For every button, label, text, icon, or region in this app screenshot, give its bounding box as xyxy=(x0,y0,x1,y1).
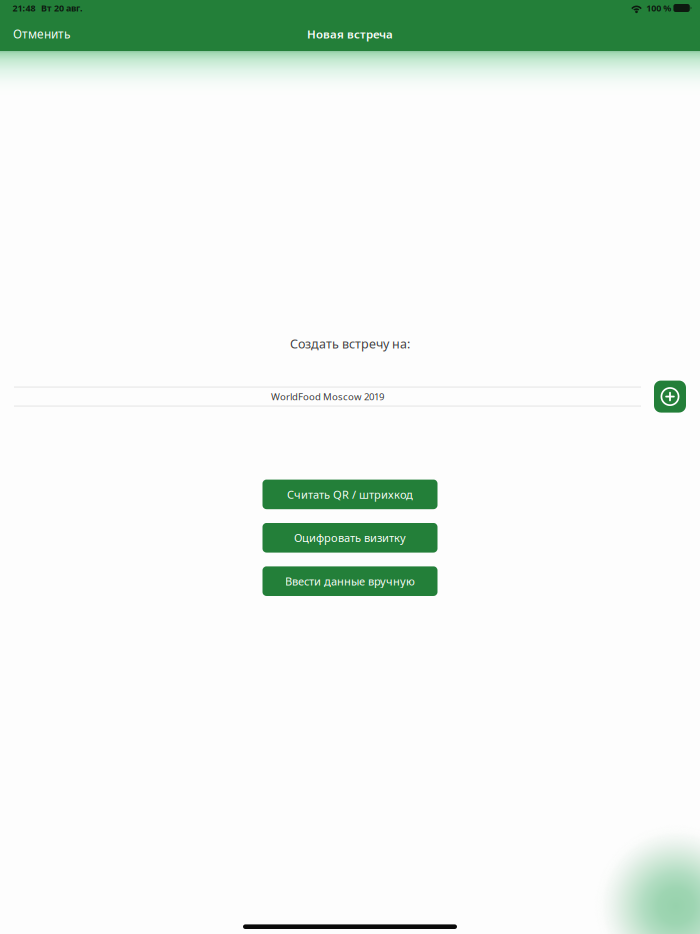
button[interactable]: Добавить встречу xyxy=(654,381,686,413)
staticText: Ввести данные вручную xyxy=(285,574,415,589)
button[interactable]: Оцифровать визитку xyxy=(262,523,437,553)
staticText: Отменить xyxy=(13,26,70,42)
staticText: Вт 20 авг. xyxy=(41,2,83,14)
staticText: 100 % xyxy=(646,2,671,14)
button[interactable]: Отменить xyxy=(0,17,84,51)
staticText: Создать встречу на: xyxy=(290,335,410,352)
staticText: 21:48 xyxy=(12,2,35,14)
staticText: Считать QR / штрихкод xyxy=(287,487,413,502)
button[interactable]: Ввести данные вручную xyxy=(262,566,437,596)
button[interactable]: Считать QR / штрихкод xyxy=(262,480,437,509)
staticText: Новая встреча xyxy=(307,26,393,42)
staticText: WorldFood Moscow 2019 xyxy=(271,390,384,403)
staticText: Оцифровать визитку xyxy=(294,530,406,545)
